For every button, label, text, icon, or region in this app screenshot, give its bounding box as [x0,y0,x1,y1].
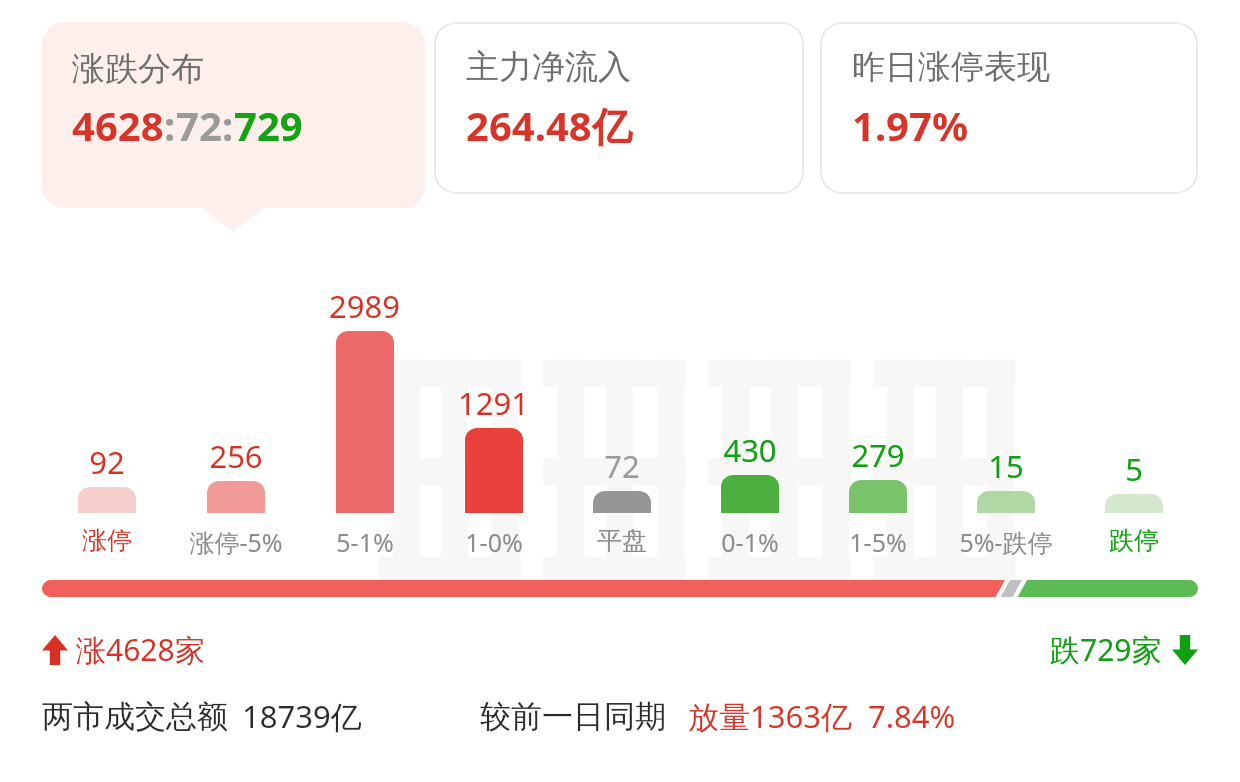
staticText: : [164,98,176,152]
button[interactable]: 72 [558,230,686,580]
staticText: 729 [234,98,303,152]
staticText: 0-1% [721,525,779,559]
staticText: 主力净流入 [466,46,631,88]
staticText: 1.97% [852,98,968,152]
button[interactable]: 279 [814,230,942,580]
staticText: 涨停-5% [189,525,283,559]
staticText: 两市成交总额 [42,697,228,736]
staticText: 7.84% [868,695,956,737]
staticText: 430 [723,429,777,471]
button[interactable]: 昨日涨停表现 [820,22,1198,194]
staticText: 1-0% [465,525,523,559]
staticText: 264.48亿 [466,98,632,153]
button[interactable]: 430 [686,230,814,580]
staticText: 18739亿 [242,695,362,737]
staticText: 279 [851,434,905,476]
staticText: 5-1% [336,525,394,559]
button[interactable]: 5 [1070,230,1198,580]
button[interactable]: 256 [171,230,300,580]
staticText: 2989 [329,285,400,327]
staticText: 涨停 [82,525,132,556]
button[interactable]: 15 [942,230,1070,580]
staticText: 5%-跌停 [959,525,1053,559]
button[interactable]: 1291 [429,230,558,580]
staticText: 涨跌分布 [72,48,204,90]
button[interactable]: 涨跌分布 [42,22,425,208]
staticText: 跌停 [1109,525,1159,556]
staticText: 72 [604,445,640,487]
button[interactable]: Declining stocks [1050,629,1198,670]
staticText: 4628 [72,98,164,152]
button[interactable] [42,580,1198,618]
staticText: 256 [209,435,263,477]
staticText: 跌729家 [1050,629,1162,670]
staticText: 涨4628家 [76,629,205,670]
button[interactable]: 2989 [300,230,429,580]
staticText: 昨日涨停表现 [852,46,1050,88]
staticText: 5 [1125,448,1143,490]
staticText: 15 [988,445,1024,487]
button[interactable]: 92 [42,230,171,580]
staticText: : [222,98,234,152]
staticText: 放量1363亿 [688,695,852,737]
button[interactable]: 两市成交总额 [42,688,1198,744]
button[interactable]: Advancing stocks [42,629,205,670]
staticText: 72 [176,98,222,152]
staticText: 92 [89,441,125,483]
staticText: 1291 [458,382,529,424]
staticText: 1-5% [849,525,907,559]
staticText: 较前一日同期 [480,697,666,736]
button[interactable]: 主力净流入 [434,22,804,194]
staticText: 平盘 [597,525,647,556]
